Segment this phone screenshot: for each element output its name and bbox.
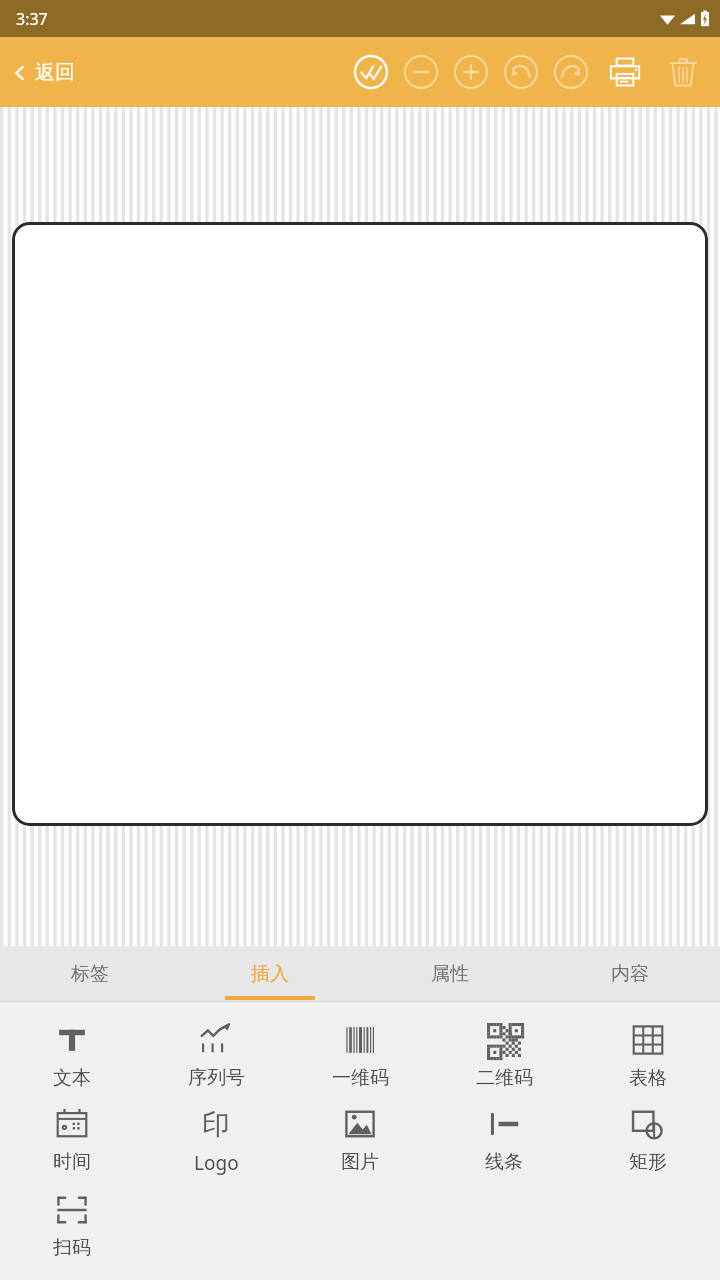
staticText: 线条 — [485, 1150, 523, 1174]
staticText: 矩形 — [629, 1150, 667, 1174]
button[interactable] — [12, 222, 708, 826]
button[interactable]: Zoom out — [396, 47, 446, 97]
button[interactable]: 一维码 — [288, 1012, 432, 1096]
button[interactable]: 二维码 — [432, 1012, 576, 1096]
button[interactable]: Zoom in — [446, 47, 496, 97]
button[interactable]: Undo — [496, 47, 546, 97]
staticText: 文本 — [53, 1066, 91, 1090]
staticText: 序列号 — [188, 1066, 245, 1090]
button[interactable]: 表格 — [576, 1012, 720, 1096]
button[interactable]: 图片 — [288, 1096, 432, 1180]
button[interactable]: Redo — [546, 47, 596, 97]
staticText: 3:37 — [16, 8, 48, 30]
button[interactable]: 矩形 — [576, 1096, 720, 1180]
staticText: Logo — [194, 1150, 239, 1176]
button[interactable]: Select all — [346, 47, 396, 97]
staticText: 表格 — [629, 1066, 667, 1090]
button[interactable]: 标签 — [0, 946, 180, 1002]
button[interactable]: 印 — [144, 1096, 288, 1182]
staticText: 插入 — [251, 962, 289, 986]
button[interactable]: 文本 — [0, 1012, 144, 1096]
staticText: 内容 — [611, 962, 649, 986]
staticText: 属性 — [431, 962, 469, 986]
staticText: 二维码 — [476, 1066, 533, 1090]
staticText: 时间 — [53, 1150, 91, 1174]
button[interactable]: 时间 — [0, 1096, 144, 1180]
button[interactable]: 序列号 — [144, 1012, 288, 1096]
button[interactable]: 插入 — [180, 946, 360, 1002]
button[interactable]: Print — [596, 43, 654, 101]
button[interactable]: 线条 — [432, 1096, 576, 1180]
button[interactable]: 扫码 — [0, 1182, 144, 1266]
button[interactable]: 属性 — [360, 946, 540, 1002]
staticText: 标签 — [71, 962, 109, 986]
staticText: 扫码 — [53, 1236, 91, 1260]
staticText: 图片 — [341, 1150, 379, 1174]
button[interactable]: 内容 — [540, 946, 720, 1002]
staticText: 一维码 — [332, 1066, 389, 1090]
staticText: 印 — [202, 1107, 230, 1142]
staticText: 返回 — [35, 60, 75, 85]
button[interactable]: Delete — [654, 43, 712, 101]
button[interactable]: 返回 — [0, 50, 89, 95]
